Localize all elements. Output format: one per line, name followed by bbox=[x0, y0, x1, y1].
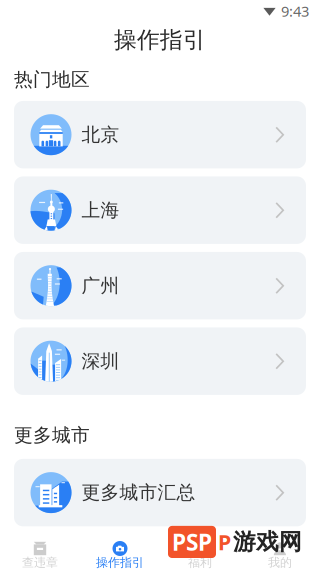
staticText: 广州 bbox=[81, 274, 119, 297]
button[interactable]: 深圳 bbox=[14, 327, 306, 395]
staticText: 操作指引 bbox=[114, 26, 206, 54]
staticText: 更多城市汇总 bbox=[81, 481, 195, 504]
staticText: 更多城市 bbox=[14, 424, 90, 447]
staticText: 操作指引 bbox=[96, 555, 144, 570]
staticText: PSP bbox=[172, 527, 212, 557]
button[interactable]: 操作指引 bbox=[80, 535, 160, 580]
staticText: P bbox=[218, 528, 231, 556]
staticText: 热门地区 bbox=[14, 68, 90, 91]
staticText: 北京 bbox=[81, 123, 119, 146]
staticText: 深圳 bbox=[81, 350, 119, 373]
staticText: 我的 bbox=[268, 555, 292, 570]
button[interactable]: 查违章 bbox=[0, 535, 80, 580]
button[interactable]: 更多城市汇总 bbox=[14, 459, 306, 526]
staticText: 游戏网 bbox=[233, 528, 302, 556]
button[interactable]: 我的 bbox=[240, 535, 320, 580]
button[interactable]: 广州 bbox=[14, 252, 306, 319]
staticText: 福利 bbox=[188, 555, 212, 570]
staticText: 查违章 bbox=[22, 555, 58, 570]
button[interactable]: 北京 bbox=[14, 101, 306, 168]
button[interactable]: 上海 bbox=[14, 176, 306, 244]
staticText: 上海 bbox=[81, 199, 119, 222]
button[interactable]: 福利 bbox=[160, 535, 240, 580]
staticText: 9:43 bbox=[281, 1, 309, 21]
